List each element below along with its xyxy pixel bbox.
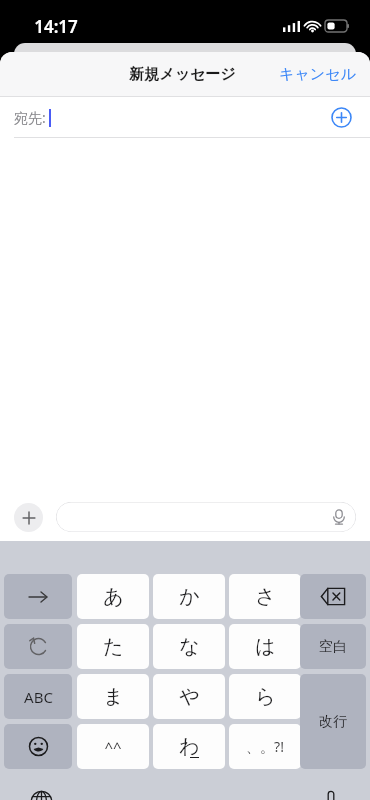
- button[interactable]: Next candidate: [4, 574, 72, 619]
- staticText: た: [103, 634, 124, 659]
- button[interactable]: た: [77, 624, 149, 669]
- staticText: 新規メッセージ: [129, 65, 236, 84]
- staticText: 空白: [319, 638, 347, 656]
- button[interactable]: は: [229, 624, 301, 669]
- staticText: 、。?!: [246, 737, 284, 756]
- staticText: は: [255, 634, 276, 659]
- button[interactable]: Dictate: [56, 502, 356, 532]
- staticText: キャンセル: [279, 65, 356, 84]
- staticText: ABC: [24, 687, 53, 707]
- button[interactable]: 改行: [300, 674, 366, 769]
- staticText: さ: [255, 584, 276, 609]
- button[interactable]: Undo: [4, 624, 72, 669]
- staticText: な: [179, 634, 200, 659]
- staticText: ^^: [104, 737, 122, 757]
- staticText: や: [179, 684, 200, 709]
- button[interactable]: 空白: [300, 624, 366, 669]
- button[interactable]: Attach: [14, 503, 43, 532]
- button[interactable]: わ: [153, 724, 225, 769]
- button[interactable]: 、。?!: [229, 724, 301, 769]
- button[interactable]: キャンセル: [265, 57, 370, 92]
- staticText: 14:17: [34, 15, 78, 38]
- button[interactable]: ま: [77, 674, 149, 719]
- button[interactable]: Dictation: [316, 786, 346, 800]
- button[interactable]: や: [153, 674, 225, 719]
- staticText: 改行: [319, 713, 347, 731]
- button[interactable]: Add contact: [328, 104, 354, 130]
- button[interactable]: ABC: [4, 674, 72, 719]
- staticText: わ: [179, 734, 200, 759]
- button[interactable]: 宛先:: [0, 97, 370, 137]
- button[interactable]: さ: [229, 574, 301, 619]
- button[interactable]: ^^: [77, 724, 149, 769]
- button[interactable]: ら: [229, 674, 301, 719]
- button[interactable]: か: [153, 574, 225, 619]
- staticText: か: [179, 584, 200, 609]
- staticText: ら: [255, 684, 276, 709]
- button[interactable]: あ: [77, 574, 149, 619]
- staticText: 宛先:: [14, 108, 46, 127]
- staticText: あ: [103, 584, 124, 609]
- button[interactable]: な: [153, 624, 225, 669]
- button[interactable]: Dictate: [331, 509, 347, 525]
- button[interactable]: Switch keyboard: [26, 786, 56, 800]
- button[interactable]: Emoji: [4, 724, 72, 769]
- staticText: ま: [103, 684, 124, 709]
- button[interactable]: Delete: [300, 574, 366, 619]
